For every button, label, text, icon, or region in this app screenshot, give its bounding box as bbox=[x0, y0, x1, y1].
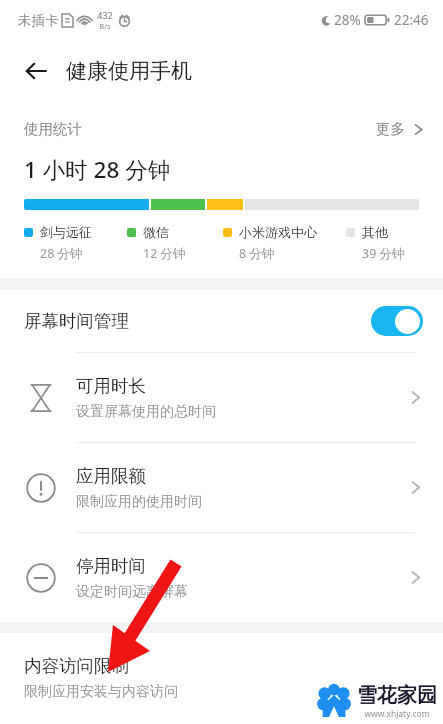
staticText: 剑与远征 bbox=[40, 224, 92, 240]
staticText: 屏幕时间管理 bbox=[24, 310, 129, 332]
staticText: 雪花家园 bbox=[357, 683, 437, 708]
button[interactable]: Screen time management toggle bbox=[371, 306, 423, 336]
staticText: 22:46 bbox=[394, 11, 429, 29]
staticText: www.xhjaty.com bbox=[364, 708, 430, 720]
staticText: 停用时间 bbox=[76, 555, 146, 577]
staticText: 432 bbox=[97, 9, 113, 21]
staticText: 内容访问限制 bbox=[24, 655, 129, 677]
staticText: 设置屏幕使用的总时间 bbox=[76, 403, 216, 421]
staticText: 使用统计 bbox=[24, 120, 82, 138]
button[interactable]: 应用限额 bbox=[0, 443, 443, 532]
button[interactable]: 停用时间 bbox=[0, 533, 443, 622]
staticText: 应用限额 bbox=[76, 465, 146, 487]
staticText: 28% bbox=[334, 11, 361, 29]
staticText: 8 分钟 bbox=[239, 245, 275, 262]
staticText: 限制应用的使用时间 bbox=[76, 493, 202, 511]
button[interactable]: 可用时长 bbox=[0, 353, 443, 442]
staticText: 未插卡 bbox=[18, 12, 59, 29]
button[interactable]: 屏幕时间管理 bbox=[0, 290, 443, 352]
button[interactable]: Back bbox=[14, 49, 58, 93]
button[interactable]: 内容访问限制 bbox=[0, 633, 443, 722]
staticText: 限制应用安装与内容访问 bbox=[24, 683, 178, 701]
staticText: 其他 bbox=[362, 224, 388, 240]
staticText: B/s bbox=[99, 21, 111, 31]
staticText: 1 小时 28 分钟 bbox=[24, 154, 171, 185]
staticText: 可用时长 bbox=[76, 375, 146, 397]
button[interactable]: 使用统计 bbox=[0, 102, 443, 144]
staticText: 健康使用手机 bbox=[66, 58, 192, 84]
staticText: 设定时间远离屏幕 bbox=[76, 583, 188, 601]
staticText: 微信 bbox=[143, 224, 169, 240]
staticText: 39 分钟 bbox=[362, 245, 405, 262]
staticText: 28 分钟 bbox=[40, 245, 83, 262]
staticText: 12 分钟 bbox=[143, 245, 186, 262]
staticText: 小米游戏中心 bbox=[239, 224, 317, 240]
staticText: 更多 bbox=[376, 120, 405, 138]
